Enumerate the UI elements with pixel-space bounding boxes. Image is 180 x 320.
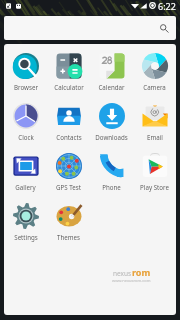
button[interactable]: Camera bbox=[133, 44, 176, 94]
staticText: Play Store bbox=[140, 183, 169, 191]
button[interactable]: GPS Test bbox=[47, 144, 90, 194]
staticText: Email bbox=[147, 133, 163, 141]
staticText: Themes bbox=[57, 233, 80, 241]
button[interactable]: Contacts bbox=[47, 94, 90, 144]
staticText: 6:22 bbox=[158, 0, 176, 11]
button[interactable]: Browser bbox=[4, 44, 47, 94]
staticText: www.nexusrom.com bbox=[112, 278, 151, 283]
button[interactable]: Downloads bbox=[90, 94, 133, 144]
other: Search bbox=[154, 17, 174, 39]
button[interactable]: Play Store bbox=[133, 144, 176, 194]
staticText: Settings bbox=[14, 233, 38, 241]
button[interactable]: Email bbox=[133, 94, 176, 144]
staticText: Phone bbox=[102, 183, 121, 191]
staticText: GPS Test bbox=[56, 183, 81, 191]
staticText: Calculator bbox=[54, 83, 84, 91]
staticText: Camera bbox=[143, 83, 166, 91]
staticText: Clock bbox=[18, 133, 34, 141]
button[interactable]: Calculator bbox=[47, 44, 90, 94]
button[interactable]: Gallery bbox=[4, 144, 47, 194]
staticText: Downloads bbox=[95, 133, 128, 141]
button[interactable]: Search bbox=[4, 16, 176, 40]
staticText: nexus bbox=[113, 269, 132, 278]
staticText: Contacts bbox=[56, 133, 82, 141]
staticText: Gallery bbox=[15, 183, 36, 191]
button[interactable]: Calendar bbox=[90, 44, 133, 94]
staticText: rom bbox=[132, 266, 151, 278]
button[interactable]: Phone bbox=[90, 144, 133, 194]
staticText: Calendar bbox=[98, 83, 125, 91]
staticText: Browser bbox=[14, 83, 38, 91]
button[interactable]: Settings bbox=[4, 194, 47, 244]
button[interactable]: Clock bbox=[4, 94, 47, 144]
button[interactable]: Themes bbox=[47, 194, 90, 244]
